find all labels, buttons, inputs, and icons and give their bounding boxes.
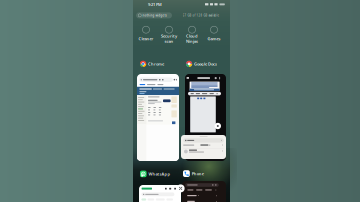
staticText: Cleaner <box>138 36 153 41</box>
staticText: 9:21 PM <box>148 2 162 7</box>
button[interactable]: Close WhatsApp <box>177 184 185 192</box>
staticText: Games <box>207 36 220 41</box>
button[interactable]: WhatsApp <box>140 171 180 177</box>
staticText: 57 GB of 128 GB available <box>182 14 219 17</box>
button[interactable] <box>137 74 179 161</box>
button[interactable]: Cloud <box>181 26 202 43</box>
button[interactable] <box>182 181 226 202</box>
button[interactable]: Chrome <box>140 61 180 67</box>
button[interactable] <box>185 74 226 161</box>
staticText: nothing widgets <box>143 14 167 17</box>
button[interactable]: Security <box>158 26 179 43</box>
staticText: WhatsApp <box>148 171 170 176</box>
button[interactable]: Phone <box>183 170 225 177</box>
staticText: Google Docs <box>194 61 217 66</box>
staticText: scan <box>164 39 173 44</box>
button[interactable] <box>139 185 181 202</box>
staticText: Chrome <box>148 61 164 66</box>
button[interactable]: Games <box>203 26 224 43</box>
staticText: Phone <box>192 171 204 176</box>
button[interactable]: Cleaner <box>135 26 156 43</box>
button[interactable]: nothing widgets <box>136 12 172 18</box>
staticText: Security <box>161 33 177 39</box>
button[interactable]: Google Docs <box>186 61 228 67</box>
staticText: Ninjas <box>186 39 198 44</box>
staticText: Cloud <box>186 33 198 39</box>
